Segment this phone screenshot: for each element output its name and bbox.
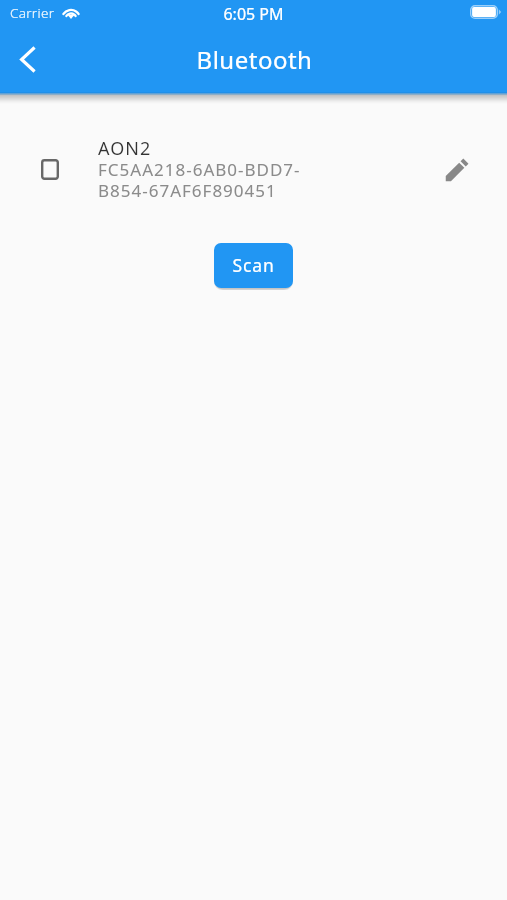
staticText: AON2 xyxy=(98,136,152,161)
button[interactable]: Scan xyxy=(214,243,293,288)
staticText: Bluetooth xyxy=(1,43,507,76)
button[interactable]: Edit xyxy=(429,142,485,198)
button[interactable]: Back xyxy=(0,32,55,87)
staticText: Carrier xyxy=(10,4,55,22)
staticText: FC5AA218-6AB0-BDD7-B854-67AF6F890451 xyxy=(98,158,313,202)
staticText: 6:05 PM xyxy=(0,3,507,25)
staticText: Scan xyxy=(232,253,275,277)
button[interactable]: AON2 xyxy=(0,128,507,212)
